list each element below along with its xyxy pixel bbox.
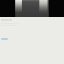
button[interactable] [1, 38, 8, 40]
